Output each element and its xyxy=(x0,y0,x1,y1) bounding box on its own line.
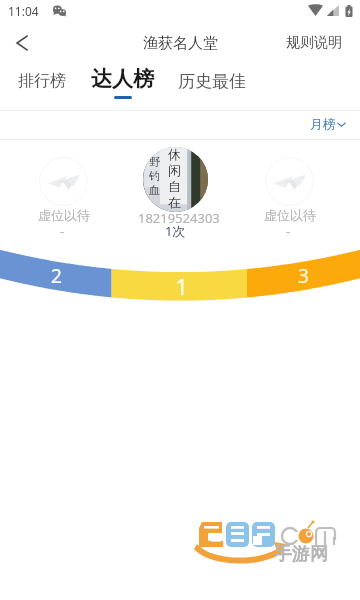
staticText: 野 xyxy=(149,155,160,169)
staticText: 血 xyxy=(149,183,160,197)
staticText: 月榜 xyxy=(310,116,336,132)
staticText: 1 xyxy=(175,271,189,295)
button[interactable]: 排行榜 xyxy=(4,63,80,99)
staticText: 闲 xyxy=(168,162,181,178)
staticText: 1次 xyxy=(165,222,186,240)
button[interactable]: Empty slot xyxy=(265,157,314,206)
staticText: 自 xyxy=(168,178,181,194)
staticText: 休 xyxy=(168,147,181,162)
staticText: 历史最佳 xyxy=(178,71,246,92)
button[interactable]: Empty slot xyxy=(39,157,88,206)
staticText: 规则说明 xyxy=(286,34,342,52)
staticText: 在 xyxy=(168,194,181,210)
staticText: - xyxy=(60,222,65,240)
button[interactable]: Back xyxy=(0,24,44,62)
staticText: - xyxy=(286,222,291,240)
button[interactable]: 规则说明 xyxy=(268,26,360,60)
staticText: 渔获名人堂 xyxy=(143,34,218,53)
staticText: 虚位以待 xyxy=(38,207,90,223)
button[interactable]: Champion avatar xyxy=(143,147,208,212)
button[interactable]: 月榜 xyxy=(298,111,360,137)
staticText: 手游网 xyxy=(274,543,328,566)
staticText: 18219524303 xyxy=(138,209,220,227)
staticText: 2 xyxy=(51,263,62,283)
staticText: 钓 xyxy=(149,169,160,183)
button[interactable]: 达人榜 xyxy=(79,62,166,110)
staticText: 排行榜 xyxy=(18,71,66,91)
staticText: 3 xyxy=(298,263,309,283)
staticText: 11:04 xyxy=(8,3,39,19)
button[interactable]: 历史最佳 xyxy=(165,63,259,100)
staticText: 达人榜 xyxy=(91,66,154,92)
staticText: 虚位以待 xyxy=(264,207,316,223)
